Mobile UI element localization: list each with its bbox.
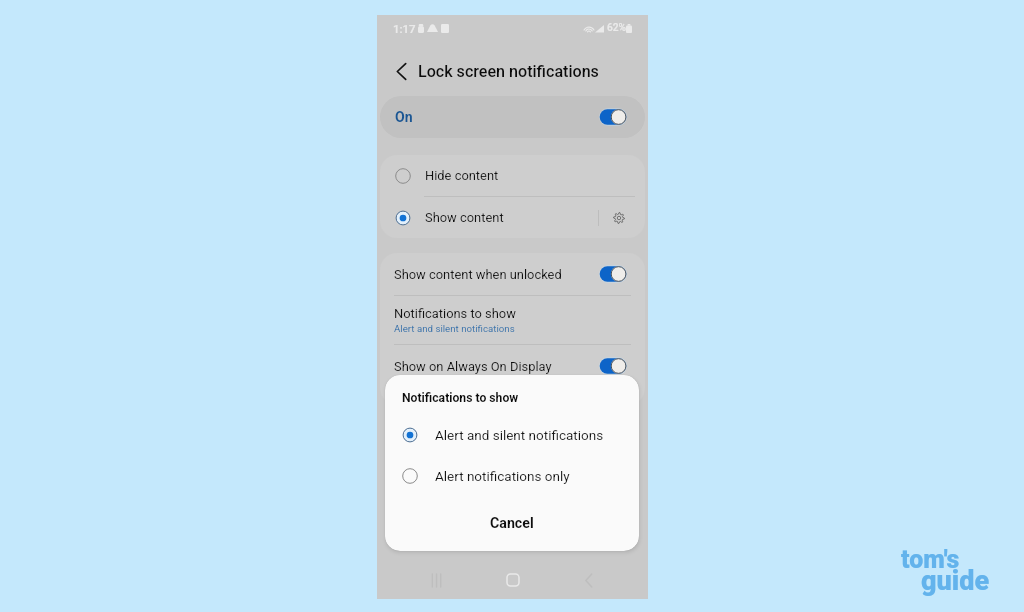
- staticText: Lock screen notifications: [418, 62, 599, 81]
- button[interactable]: Show on Always On Display: [380, 345, 645, 387]
- staticText: Cancel: [490, 515, 534, 532]
- staticText: Notifications to show: [402, 391, 519, 405]
- staticText: Show on Always On Display: [394, 359, 552, 374]
- staticText: On: [395, 109, 413, 126]
- button[interactable]: Alert notifications only: [385, 461, 639, 491]
- button[interactable]: Alert and silent notifications: [385, 419, 639, 451]
- button[interactable]: Hide content: [380, 155, 645, 196]
- staticText: 1:17: [393, 22, 416, 35]
- staticText: Alert and silent notifications: [394, 323, 515, 334]
- staticText: guide: [921, 565, 990, 597]
- button[interactable]: Cancel: [385, 504, 639, 543]
- button[interactable]: Home: [495, 562, 531, 598]
- button[interactable]: Navigate up: [387, 59, 411, 83]
- button[interactable]: Notification settings: [608, 207, 629, 228]
- staticText: 62%: [607, 22, 627, 34]
- staticText: Alert and silent notifications: [435, 427, 604, 443]
- button[interactable]: Show content when unlocked: [380, 253, 645, 295]
- button[interactable]: Notifications to show: [380, 296, 645, 344]
- button[interactable]: Show content: [380, 197, 645, 238]
- staticText: Notifications to show: [394, 306, 516, 321]
- staticText: Alert notifications only: [435, 468, 570, 484]
- staticText: Hide content: [425, 168, 499, 183]
- staticText: Show content when unlocked: [394, 267, 562, 282]
- button[interactable]: On: [380, 96, 645, 138]
- staticText: Show content: [425, 210, 504, 225]
- staticText: tom's: [901, 545, 960, 574]
